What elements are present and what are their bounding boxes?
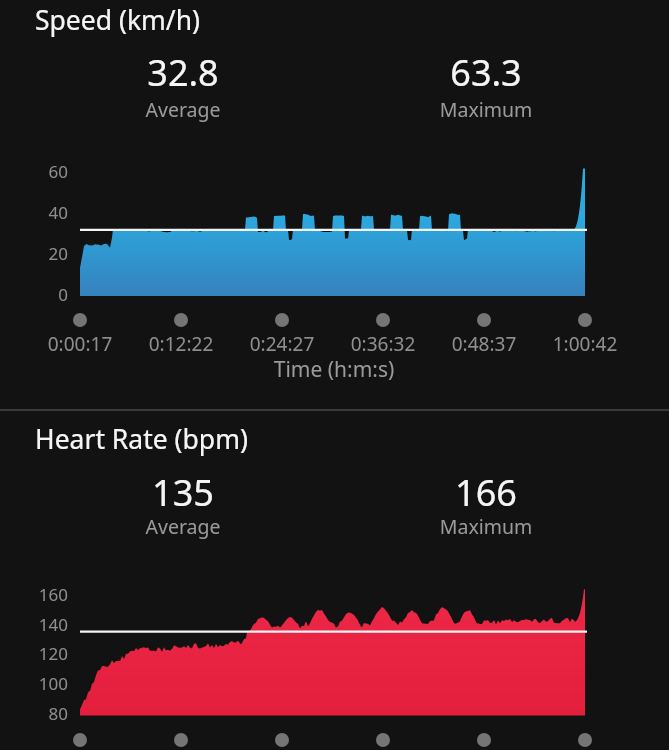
staticText: 166 bbox=[386, 468, 586, 517]
staticText: 120 bbox=[3, 642, 68, 665]
staticText: Time (h:m:s) bbox=[214, 355, 454, 384]
staticText: 40 bbox=[8, 201, 68, 224]
staticText: Heart Rate (bpm) bbox=[35, 421, 248, 457]
staticText: 0:12:22 bbox=[121, 331, 241, 357]
staticText: 0:24:27 bbox=[222, 331, 342, 357]
staticText: 0:00:17 bbox=[20, 331, 140, 357]
staticText: 32.8 bbox=[83, 48, 283, 97]
staticText: Maximum bbox=[386, 96, 586, 123]
staticText: 135 bbox=[83, 468, 283, 517]
staticText: Maximum bbox=[386, 513, 586, 540]
staticText: Average bbox=[83, 96, 283, 123]
button[interactable]: Heart rate chart, average 135, maximum 1… bbox=[0, 411, 669, 750]
staticText: 0:48:37 bbox=[424, 331, 544, 357]
staticText: 1:00:42 bbox=[525, 331, 645, 357]
staticText: Average bbox=[83, 513, 283, 540]
staticText: 140 bbox=[3, 613, 68, 636]
other: Speed chart, average 32.8, maximum 63.3 … bbox=[0, 0, 669, 409]
staticText: 80 bbox=[3, 702, 68, 725]
other: Heart rate chart, average 135, maximum 1… bbox=[0, 411, 669, 750]
staticText: Speed (km/h) bbox=[35, 2, 200, 38]
staticText: 0 bbox=[8, 283, 68, 306]
staticText: 0:36:32 bbox=[323, 331, 443, 357]
staticText: 60 bbox=[8, 160, 68, 183]
staticText: 63.3 bbox=[386, 48, 586, 97]
staticText: 100 bbox=[3, 672, 68, 695]
staticText: 20 bbox=[8, 242, 68, 265]
button[interactable]: Speed chart, average 32.8, maximum 63.3 … bbox=[0, 0, 669, 409]
staticText: 160 bbox=[3, 583, 68, 606]
